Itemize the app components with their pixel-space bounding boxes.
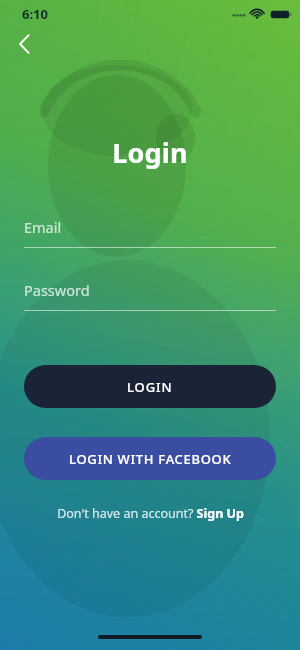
button[interactable]: LOGIN	[24, 365, 276, 408]
button[interactable]: LOGIN WITH FACEBOOK	[24, 437, 276, 480]
button[interactable]: Email	[24, 217, 276, 248]
staticText: 6:10	[22, 5, 48, 23]
staticText: LOGIN	[127, 378, 173, 396]
staticText: Password	[24, 280, 90, 300]
staticText: LOGIN WITH FACEBOOK	[69, 450, 232, 468]
button[interactable]: Back	[6, 26, 42, 62]
staticText: Login	[0, 134, 300, 171]
button[interactable]: Don't have an account? Sign Up	[53, 503, 248, 524]
button[interactable]: Password	[24, 280, 276, 311]
staticText: Don't have an account? Sign Up	[57, 505, 244, 522]
staticText: Email	[24, 217, 62, 237]
